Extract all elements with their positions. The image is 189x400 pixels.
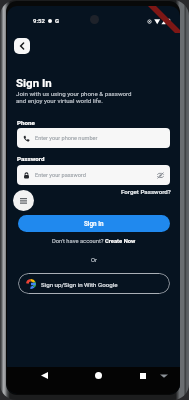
staticText: Sign In [16,76,52,89]
button[interactable]: Hide keyboard [157,369,170,382]
staticText: Create Now [105,238,136,245]
staticText: Don't have account? [52,238,105,245]
button[interactable]: Create Now [105,238,136,245]
staticText: Password [17,155,45,162]
button[interactable]: Menu [13,190,34,211]
staticText: 9:52 [33,17,45,24]
staticText: Sign up/Sign in With Google [41,281,118,288]
staticText: G [55,17,60,24]
staticText: Sign In [84,220,104,228]
staticText: Or [91,257,97,264]
button[interactable]: Sign up/Sign in With Google [18,273,170,294]
button[interactable]: Enter your password [17,165,170,185]
staticText: Phone [17,119,35,126]
staticText: Forget Password? [121,188,171,195]
button[interactable]: Home [92,369,105,382]
staticText: Join with us using your phone & password… [16,90,132,105]
button[interactable]: Enter your phone number [17,128,170,148]
button[interactable]: Back [14,38,30,54]
button[interactable]: Recent apps [136,369,149,382]
button[interactable]: Sign In [18,215,170,232]
button[interactable]: Back [38,369,51,382]
staticText: Enter your password [35,172,86,179]
button[interactable]: Forget Password? [101,187,171,196]
staticText: Enter your phone number [35,135,98,142]
